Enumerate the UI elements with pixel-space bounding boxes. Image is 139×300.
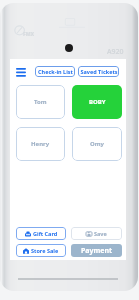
button[interactable]: Payment [71, 244, 122, 257]
staticText: BOBY [89, 98, 106, 106]
button[interactable]: Save [71, 227, 122, 240]
button[interactable]: Omy [72, 127, 122, 161]
button[interactable]: Gift Card [16, 227, 66, 240]
staticText: Omy [90, 140, 105, 148]
button[interactable]: Check-in List [35, 66, 75, 77]
button[interactable]: Tom [16, 85, 65, 119]
staticText: Gift Card [33, 230, 58, 237]
button[interactable]: Saved Tickets [78, 66, 119, 77]
staticText: Payment [81, 246, 113, 256]
button[interactable]: Menu [16, 66, 26, 77]
staticText: Saved Tickets [80, 68, 118, 75]
staticText: Store Sale [31, 247, 59, 254]
staticText: A920 [107, 47, 124, 57]
button[interactable]: Henry [16, 127, 65, 161]
staticText: FMX [23, 31, 35, 38]
staticText: Check-in List [38, 68, 73, 75]
staticText: Save [94, 230, 107, 237]
button[interactable]: Store Sale [16, 244, 66, 257]
staticText: Henry [31, 140, 50, 148]
button[interactable]: BOBY [72, 85, 122, 119]
staticText: Tom [34, 98, 47, 106]
